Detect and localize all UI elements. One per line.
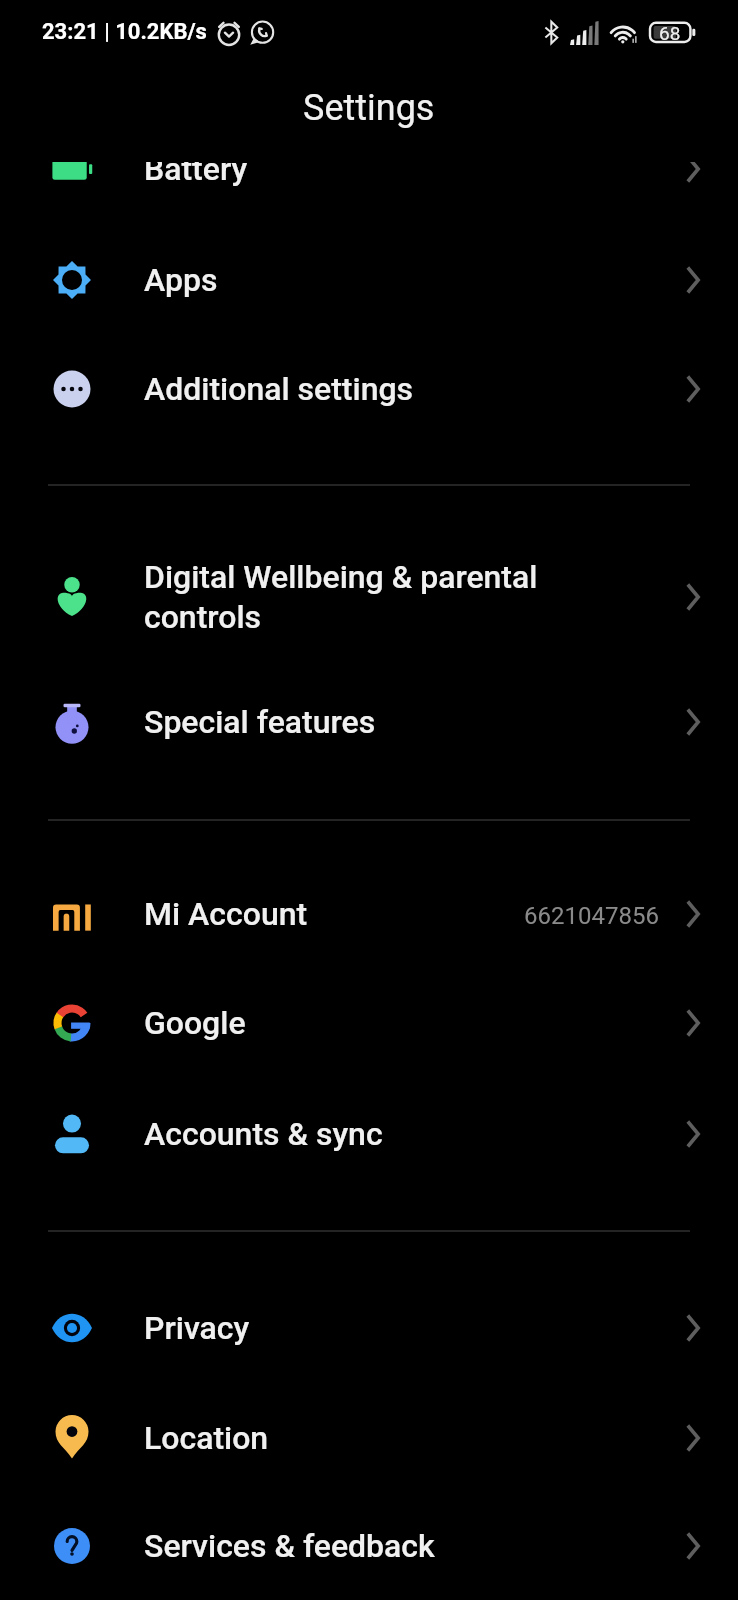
button[interactable]: Special features [0,670,738,774]
button[interactable]: Location [0,1386,738,1490]
staticText: Google [144,1004,246,1042]
staticText: Digital Wellbeing & parental [144,558,538,596]
staticText: Location [144,1419,269,1457]
other: WhatsApp notification [248,19,276,47]
button[interactable]: Mi Account [0,862,738,966]
button[interactable]: Privacy [0,1276,738,1380]
staticText: 6621047856 [524,902,659,930]
button[interactable]: Digital Wellbeing & parental [0,525,738,669]
button[interactable]: Battery [0,162,738,225]
staticText: 23:21 | 10.2KB/s [42,19,207,45]
button[interactable]: Apps [0,228,738,332]
other: Wi-Fi connected [609,20,639,46]
other: Mobile signal [570,21,599,45]
staticText: Accounts & sync [144,1115,383,1153]
other: Alarm set [217,20,241,44]
other: Bluetooth on [543,20,560,45]
button[interactable]: Services & feedback [0,1494,738,1598]
button[interactable]: Google [0,971,738,1075]
staticText: controls [144,598,262,636]
staticText: 68 [659,22,681,44]
staticText: Additional settings [144,370,414,408]
staticText: Privacy [144,1309,250,1347]
button[interactable]: Accounts & sync [0,1082,738,1186]
staticText: Services & feedback [144,1527,435,1565]
staticText: Battery [144,162,248,188]
staticText: Mi Account [144,895,308,933]
staticText: Apps [144,261,218,299]
button[interactable]: Additional settings [0,337,738,441]
staticText: Special features [144,703,376,741]
staticText: Settings [303,87,435,129]
